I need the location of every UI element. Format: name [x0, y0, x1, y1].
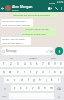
button[interactable]: d — [18, 77, 25, 83]
staticText: 7 — [42, 62, 44, 66]
staticText: z — [14, 86, 16, 90]
staticText: u — [42, 70, 44, 74]
staticText: i — [49, 70, 50, 74]
staticText: h — [39, 78, 41, 82]
button[interactable]: 5 — [28, 61, 34, 67]
button[interactable]: c — [24, 85, 30, 91]
button[interactable]: Hey! Sounds like a plan. What time are w… — [1, 19, 33, 27]
button[interactable]: More options — [59, 4, 64, 12]
button[interactable]: a — [4, 77, 11, 83]
button[interactable]: 2 — [7, 61, 14, 67]
button[interactable]: ?123 — [0, 93, 9, 99]
button[interactable]: 8 — [46, 61, 52, 67]
staticText: m — [50, 86, 53, 90]
staticText: 1 — [3, 62, 5, 66]
button[interactable]: Video call — [47, 4, 53, 12]
button[interactable]: ⌫ — [54, 85, 64, 91]
button[interactable]: 0 — [58, 61, 64, 67]
button[interactable]: e — [14, 69, 21, 75]
staticText: f — [28, 78, 29, 82]
staticText: , — [12, 94, 13, 98]
button[interactable]: v — [30, 85, 36, 91]
staticText: ↵ — [58, 95, 61, 98]
button[interactable]: ↵ — [54, 93, 64, 99]
button[interactable]: g — [31, 77, 37, 83]
staticText: l — [58, 78, 59, 82]
button[interactable]: t — [28, 69, 34, 75]
button[interactable]: All — [0, 55, 22, 60]
button[interactable]: o — [52, 69, 58, 75]
staticText: Hey! Sounds like a plan. What time are w… — [2, 20, 31, 26]
button[interactable]: p — [58, 69, 64, 75]
staticText: 8 — [48, 62, 50, 66]
staticText: Messages are end-to-end encrypted — [13, 14, 50, 16]
button[interactable]: m — [48, 85, 54, 91]
button[interactable]: u — [40, 69, 46, 75]
staticText: 6 — [36, 62, 38, 66]
button[interactable]: Messages are end-to-end encrypted — [12, 13, 57, 17]
button[interactable]: 1 — [0, 61, 7, 67]
staticText: c — [26, 86, 28, 90]
button[interactable]: b — [36, 85, 42, 91]
button[interactable]: Also — [43, 55, 64, 60]
button[interactable]: Around 7 works for me — [24, 27, 56, 31]
staticText: online — [12, 9, 19, 12]
staticText: p — [60, 70, 62, 74]
button[interactable]: I'll book us a table now — [21, 32, 56, 36]
button[interactable]: 9 — [52, 61, 58, 67]
staticText: x — [20, 86, 22, 90]
staticText: Perfect, see you there! Don't be late ag… — [2, 38, 25, 44]
button[interactable]: q — [0, 69, 7, 75]
staticText: g — [33, 78, 35, 82]
button[interactable]: Call — [53, 4, 59, 12]
button[interactable]: w — [7, 69, 14, 75]
button[interactable]: j — [43, 77, 49, 83]
staticText: Around 7 works for me — [25, 28, 49, 30]
button[interactable]: s — [11, 77, 18, 83]
button[interactable]: Voice message — [55, 47, 63, 55]
staticText: Also — [51, 56, 56, 59]
staticText: j — [46, 78, 47, 82]
staticText: a — [7, 78, 9, 82]
button[interactable]: l — [55, 77, 61, 83]
button[interactable]: ⇧ — [0, 85, 11, 91]
button[interactable]: Alright — [22, 55, 43, 60]
staticText: 12:45 — [49, 1, 56, 4]
staticText: t — [30, 70, 32, 74]
button[interactable]: Back — [0, 4, 5, 12]
staticText: w — [9, 70, 12, 74]
button[interactable]: 3 — [14, 61, 21, 67]
staticText: 3 — [17, 62, 19, 66]
button[interactable]: Perfect, see you there! Don't be late ag… — [1, 37, 31, 45]
staticText: y — [36, 70, 38, 74]
button[interactable]: Message — [1, 47, 54, 55]
staticText: 5 — [30, 62, 32, 66]
staticText: o — [54, 70, 56, 74]
staticText: q — [3, 70, 5, 74]
staticText: b — [38, 86, 40, 90]
button[interactable]: i — [46, 69, 52, 75]
button[interactable]: f — [25, 77, 31, 83]
staticText: s — [14, 78, 16, 82]
button[interactable]: x — [18, 85, 24, 91]
staticText: v — [32, 86, 34, 90]
button[interactable]: . — [47, 93, 54, 99]
button[interactable]: , — [9, 93, 16, 99]
button[interactable]: k — [49, 77, 55, 83]
staticText: 2 — [10, 62, 12, 66]
button[interactable]: 6 — [34, 61, 40, 67]
staticText: Alex Morgan — [12, 4, 33, 9]
button[interactable]: z — [11, 85, 18, 91]
button[interactable]: 4 — [21, 61, 28, 67]
staticText: All — [10, 56, 13, 59]
button[interactable]: n — [42, 85, 48, 91]
staticText: r — [24, 70, 26, 74]
button[interactable]: h — [37, 77, 43, 83]
button[interactable]: y — [34, 69, 40, 75]
staticText: 9 — [54, 62, 56, 66]
staticText: 4 — [24, 62, 26, 66]
button[interactable]: r — [21, 69, 28, 75]
staticText: . — [50, 94, 51, 98]
button[interactable]: 7 — [40, 61, 46, 67]
